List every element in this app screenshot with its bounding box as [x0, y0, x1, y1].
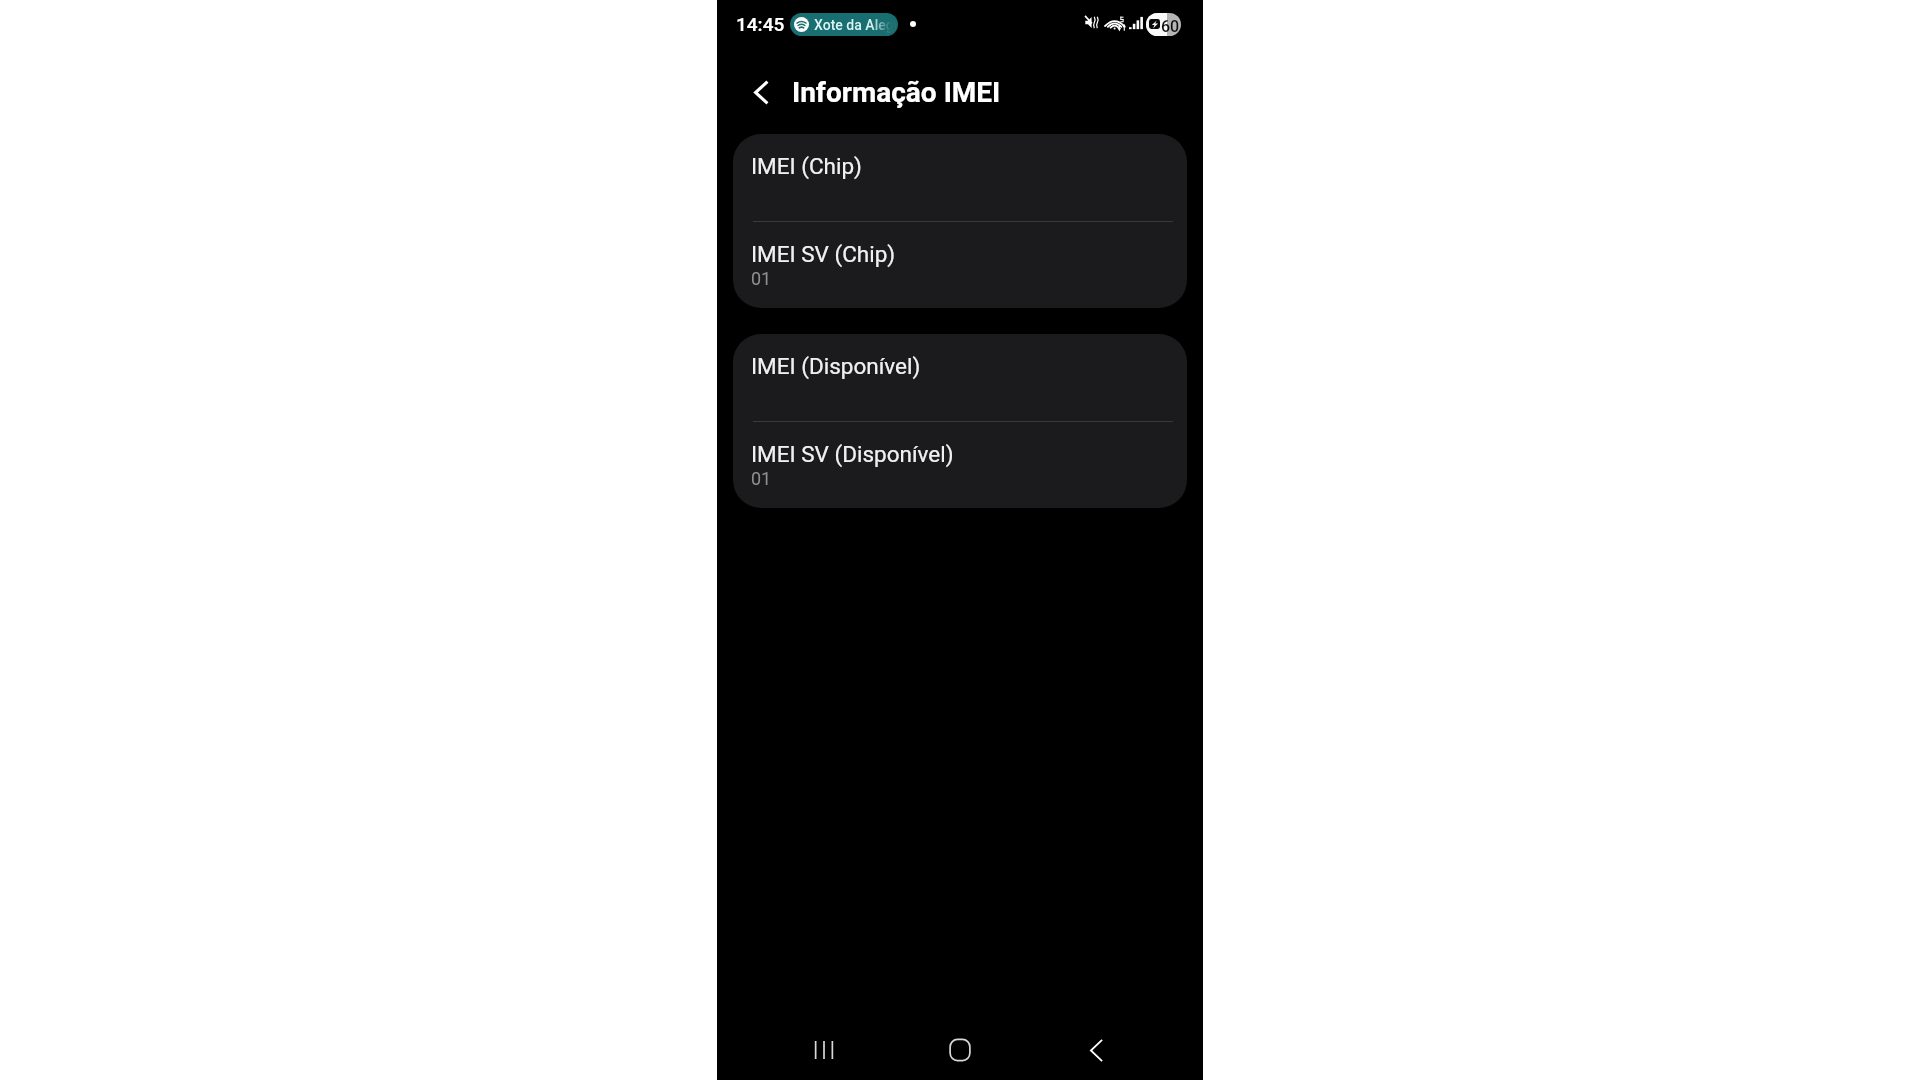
staticText: IMEI SV (Disponível): [751, 441, 954, 467]
button[interactable]: Home: [936, 1020, 983, 1080]
staticText: IMEI (Chip): [751, 153, 862, 179]
button[interactable]: Back: [1073, 1020, 1120, 1080]
staticText: IMEI SV (Chip): [751, 241, 896, 267]
button[interactable]: IMEI SV (Chip): [733, 222, 1187, 308]
staticText: 01: [751, 468, 772, 489]
staticText: Xote da Alegria: [814, 17, 896, 33]
staticText: Informação IMEI: [792, 76, 1001, 109]
button[interactable]: IMEI (Chip): [733, 134, 1187, 221]
staticText: 14:45: [736, 13, 785, 35]
button[interactable]: Xote da Alegria: [790, 13, 898, 36]
staticText: IMEI (Disponível): [751, 353, 921, 379]
staticText: 60: [1161, 17, 1180, 36]
button[interactable]: Back: [739, 70, 783, 114]
button[interactable]: Recent apps: [800, 1020, 847, 1080]
button[interactable]: IMEI SV (Disponível): [733, 422, 1187, 508]
button[interactable]: IMEI (Disponível): [733, 334, 1187, 421]
staticText: 01: [751, 268, 772, 289]
